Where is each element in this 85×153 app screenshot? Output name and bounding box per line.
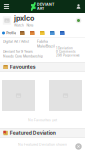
staticText: Favourites bbox=[10, 64, 36, 70]
staticText: Male/Brazil bbox=[37, 44, 55, 48]
staticText: No Favourites yet bbox=[28, 118, 57, 122]
button[interactable]: Account bbox=[72, 0, 85, 13]
button[interactable]: Gallery bbox=[17, 28, 27, 38]
staticText: Deviant for 9 Years bbox=[3, 50, 33, 54]
button[interactable]: Options bbox=[72, 13, 85, 28]
staticText: No Featured Deviation shown bbox=[18, 142, 67, 147]
staticText: DEVIANT bbox=[37, 2, 54, 7]
staticText: Watch bbox=[14, 23, 24, 27]
button[interactable]: Posts bbox=[47, 28, 57, 38]
staticText: ART bbox=[37, 6, 44, 11]
button[interactable]: Favourites bbox=[37, 28, 47, 38]
button[interactable]: Prints bbox=[27, 28, 37, 38]
button[interactable]: About bbox=[57, 28, 67, 38]
button[interactable]: Avatar bbox=[0, 13, 14, 28]
staticText: 298 Pageviews bbox=[56, 54, 80, 57]
staticText: Profile bbox=[6, 31, 16, 35]
staticText: 0 Comments bbox=[56, 50, 76, 53]
button[interactable]: Dismiss bbox=[72, 140, 85, 153]
button[interactable]: Profile bbox=[0, 28, 17, 38]
staticText: 1 Deviation bbox=[56, 46, 73, 50]
button[interactable]: Note bbox=[26, 23, 33, 27]
button[interactable]: Favourites bbox=[0, 62, 85, 72]
button[interactable]: Watch bbox=[14, 23, 24, 27]
button[interactable]: Menu bbox=[0, 0, 13, 13]
staticText: Fabiha bbox=[37, 40, 48, 44]
staticText: Featured Deviation bbox=[10, 130, 56, 136]
staticText: jpxlco bbox=[14, 14, 34, 22]
staticText: Needs Core Membership bbox=[3, 54, 43, 58]
staticText: Digital Art / Artist bbox=[3, 40, 29, 44]
staticText: Note bbox=[26, 23, 33, 27]
button[interactable]: Featured Deviation bbox=[0, 128, 85, 138]
